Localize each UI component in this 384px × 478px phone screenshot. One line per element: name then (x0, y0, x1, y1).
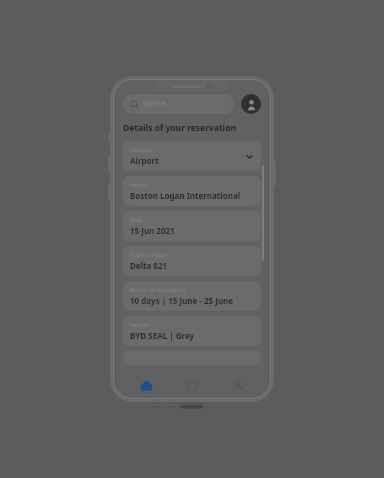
button[interactable]: Adress (123, 176, 261, 206)
staticText: Location (130, 146, 153, 153)
button[interactable]: Vehicle (123, 316, 261, 346)
button[interactable]: Location (123, 141, 261, 171)
button[interactable]: Profile (241, 94, 261, 114)
staticText: Search (143, 99, 166, 109)
staticText: Airport (130, 155, 159, 166)
staticText: Adress (130, 181, 148, 188)
staticText: Boston Logan International Airport (130, 190, 254, 201)
staticText: Date (130, 216, 143, 223)
staticText: 15 Jun 2021 (130, 225, 175, 236)
button[interactable]: Period of reservation (123, 281, 261, 311)
staticText: Details of your reservation (123, 122, 237, 134)
button[interactable]: Home (123, 372, 169, 398)
staticText: 10 days | 15 June - 25 June (130, 295, 234, 306)
staticText: Vehicle (130, 321, 149, 328)
staticText: BYD SEAL | Grey (130, 330, 195, 341)
button[interactable]: Date (123, 211, 261, 241)
staticText: Flight number (130, 251, 168, 258)
button[interactable]: Flight number (123, 246, 261, 276)
button[interactable]: Search (123, 94, 234, 114)
staticText: Period of reservation (130, 286, 186, 293)
staticText: Delta 821 (130, 260, 168, 271)
